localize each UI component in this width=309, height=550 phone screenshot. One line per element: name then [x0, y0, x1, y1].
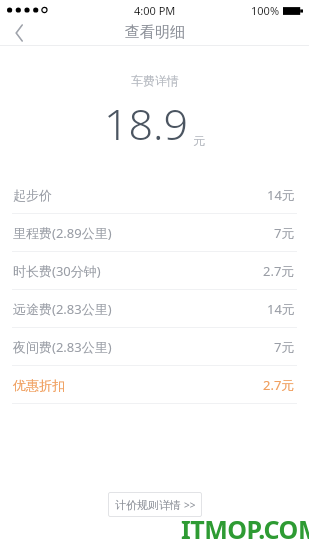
staticText: >> — [184, 498, 196, 512]
button[interactable]: 时长费(30分钟) — [0, 252, 309, 289]
staticText: 起步价 — [13, 187, 52, 203]
button[interactable]: Back — [0, 20, 40, 45]
staticText: 元 — [193, 133, 205, 148]
staticText: 远途费(2.83公里) — [13, 300, 112, 318]
staticText: 100% — [251, 3, 280, 18]
button[interactable]: 夜间费(2.83公里) — [0, 328, 309, 365]
staticText: 18.9 — [104, 94, 189, 153]
staticText: 时长费(30分钟) — [13, 262, 101, 280]
staticText: 4:00 PM — [134, 3, 176, 18]
button[interactable]: 远途费(2.83公里) — [0, 290, 309, 327]
button[interactable]: 优惠折扣 — [0, 366, 309, 403]
staticText: 车费详情 — [131, 73, 179, 88]
staticText: 2.7元 — [263, 376, 295, 394]
staticText: 计价规则详情 — [115, 498, 181, 512]
button[interactable]: 起步价 — [0, 177, 309, 213]
button[interactable]: 里程费(2.89公里) — [0, 214, 309, 251]
staticText: 2.7元 — [263, 262, 295, 280]
staticText: 里程费(2.89公里) — [13, 224, 112, 242]
staticText: 夜间费(2.83公里) — [13, 338, 112, 356]
staticText: 7元 — [274, 338, 295, 356]
staticText: 14元 — [267, 300, 295, 318]
staticText: ITMOP.COM — [181, 512, 309, 546]
staticText: 查看明细 — [125, 23, 185, 42]
staticText: 优惠折扣 — [13, 377, 65, 393]
staticText: 14元 — [267, 186, 295, 204]
button[interactable]: 计价规则详情 — [108, 492, 202, 517]
staticText: 7元 — [274, 224, 295, 242]
